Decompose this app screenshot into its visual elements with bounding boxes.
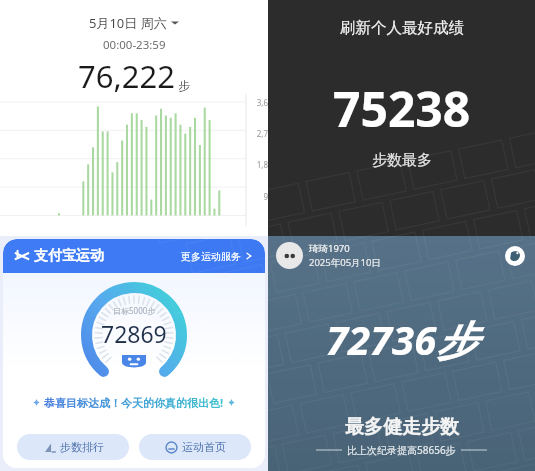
staticText: 1,8 bbox=[246, 159, 268, 170]
staticText: 75238 bbox=[333, 76, 471, 141]
staticText: 比上次纪录提高58656步 bbox=[347, 443, 456, 457]
staticText: 支付宝运动 bbox=[34, 247, 104, 265]
staticText: 2,7 bbox=[246, 128, 268, 139]
staticText: 运动首页 bbox=[182, 440, 226, 454]
staticText: 00:00-23:59 bbox=[103, 37, 166, 53]
staticText: 72736步 bbox=[326, 312, 477, 367]
button[interactable]: 运动首页 bbox=[139, 434, 251, 460]
staticText: 步数最多 bbox=[372, 151, 432, 170]
staticText: 9 bbox=[246, 191, 268, 202]
staticText: 3,6 bbox=[246, 97, 268, 108]
staticText: 更多运动服务 bbox=[181, 250, 241, 263]
staticText: 2025年05月10日 bbox=[309, 256, 381, 269]
button[interactable]: 步数排行 bbox=[17, 434, 129, 460]
staticText: 最多健走步数 bbox=[345, 415, 459, 439]
staticText: 琦琦1970 bbox=[309, 242, 350, 255]
staticText: 5月10日 周六 bbox=[89, 14, 167, 32]
staticText: 76,222 bbox=[78, 55, 175, 97]
staticText: 72869 bbox=[101, 318, 167, 349]
button[interactable]: WeRun bbox=[505, 246, 525, 266]
staticText: 目标5000步 bbox=[113, 305, 156, 316]
staticText: 步 bbox=[178, 78, 190, 93]
button[interactable]: 支付宝运动 bbox=[3, 239, 265, 273]
staticText: 刷新个人最好成绩 bbox=[340, 18, 464, 38]
staticText: 步数排行 bbox=[60, 440, 104, 454]
staticText: 恭喜目标达成！今天的你真的很出色! bbox=[44, 395, 224, 410]
